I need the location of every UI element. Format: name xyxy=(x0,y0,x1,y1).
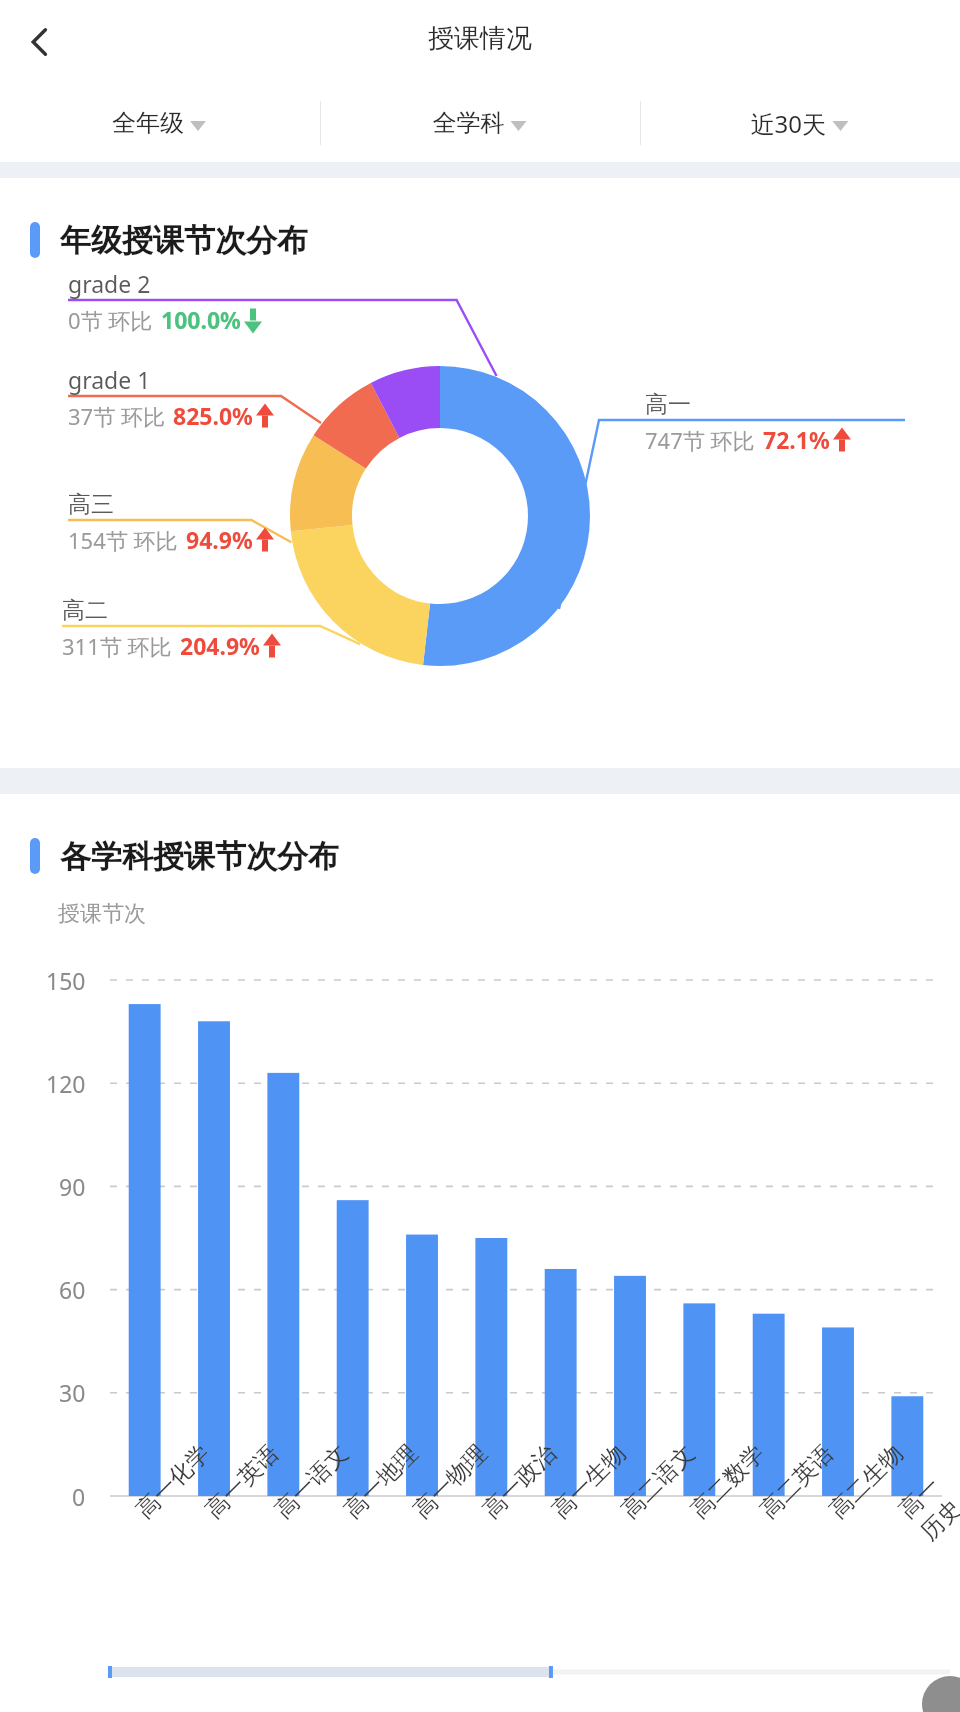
button[interactable]: Back xyxy=(8,10,72,74)
button[interactable] xyxy=(321,84,640,162)
button[interactable] xyxy=(641,84,960,162)
button[interactable] xyxy=(0,84,320,162)
button[interactable]: More options xyxy=(922,1676,960,1712)
